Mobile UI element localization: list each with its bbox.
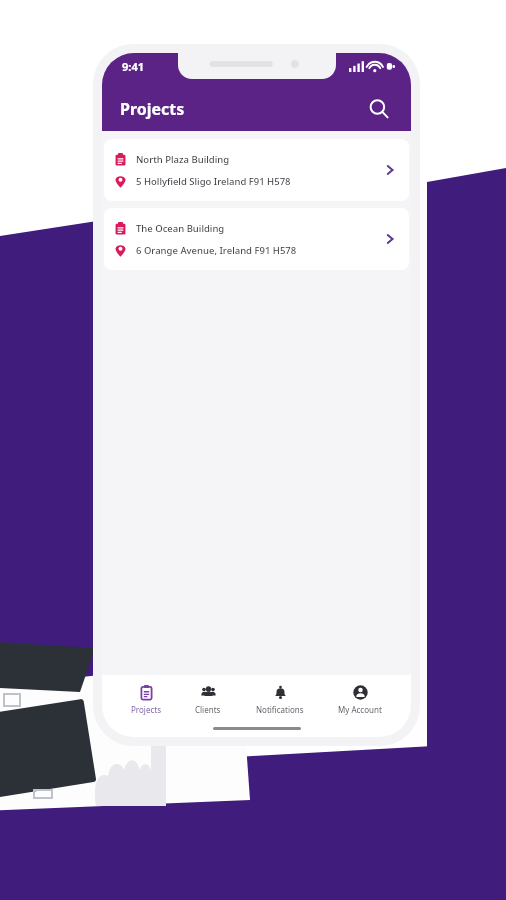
staticText: 9:41	[122, 59, 144, 74]
staticText: Clients	[195, 704, 221, 715]
staticText: The Ocean Building	[136, 222, 225, 235]
staticText: 5 Hollyfield Sligo Ireland F91 H578	[136, 175, 291, 188]
button[interactable]: North Plaza Building	[104, 139, 409, 201]
button[interactable]: My Account	[332, 683, 388, 717]
staticText: Projects	[131, 704, 161, 715]
button[interactable]: Projects	[125, 683, 167, 717]
staticText: Notifications	[256, 704, 304, 715]
staticText: My Account	[338, 704, 382, 715]
staticText: Projects	[120, 98, 185, 120]
button[interactable]: Search	[363, 93, 395, 125]
button[interactable]: Notifications	[250, 683, 310, 717]
staticText: 6 Orange Avenue, Ireland F91 H578	[136, 244, 297, 257]
button[interactable]: Clients	[189, 683, 227, 717]
staticText: North Plaza Building	[136, 153, 230, 166]
button[interactable]: The Ocean Building	[104, 208, 409, 270]
